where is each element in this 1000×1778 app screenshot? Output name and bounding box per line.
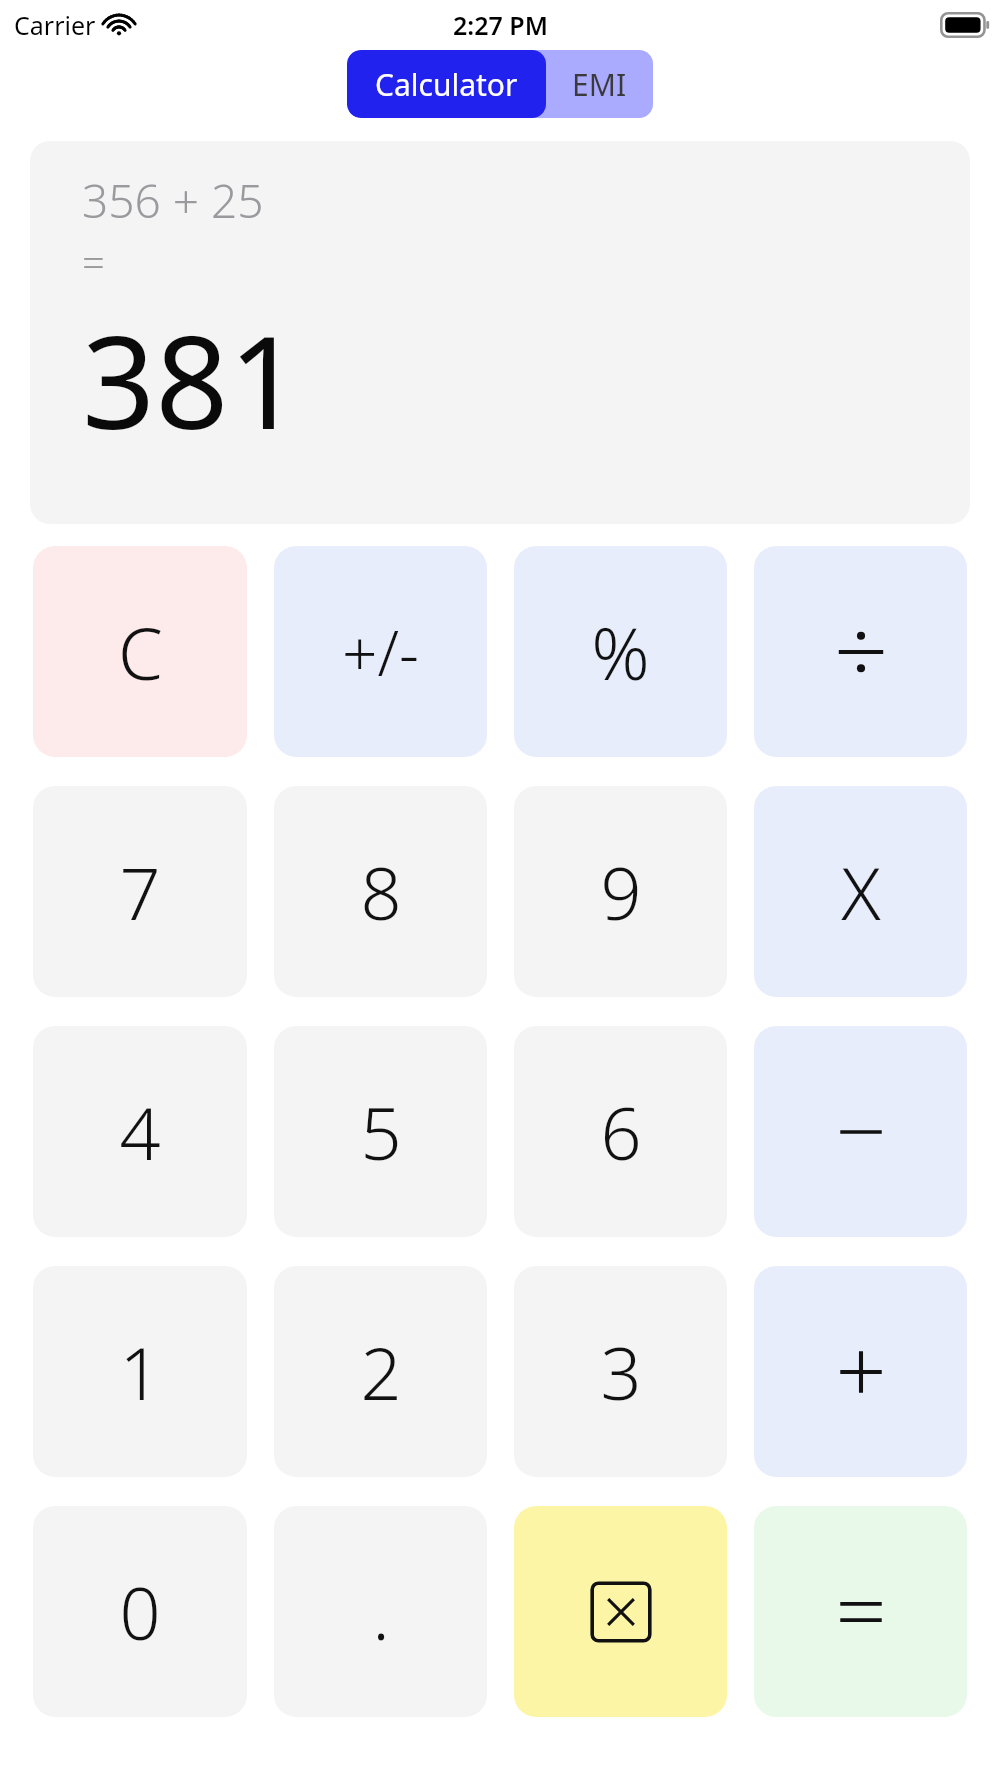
button[interactable]: 9 [514,786,727,997]
button[interactable]: 2 [274,1266,487,1477]
staticText: = [82,234,105,288]
staticText: 2 [360,1323,402,1421]
button[interactable]: 1 [33,1266,247,1477]
button[interactable]: 7 [33,786,247,997]
button[interactable]: Divide [754,546,967,757]
button[interactable]: 5 [274,1026,487,1237]
staticText: 3 [600,1323,642,1421]
staticText: 0 [119,1563,161,1661]
button[interactable]: . [274,1506,487,1717]
button[interactable]: 0 [33,1506,247,1717]
staticText: Carrier [14,8,96,42]
staticText: 6 [600,1083,642,1181]
staticText: 356 + 25 [82,169,264,232]
staticText: 7 [119,843,161,941]
staticText: 1 [119,1323,161,1421]
button[interactable]: Minus [754,1026,967,1237]
staticText: C [118,603,163,701]
button[interactable]: Calculator [347,50,546,118]
button[interactable]: Equals [754,1506,967,1717]
staticText: 381 [82,292,302,466]
staticText: X [841,843,881,941]
staticText: 8 [360,843,402,941]
button[interactable]: C [33,546,247,757]
button[interactable]: X [754,786,967,997]
staticText: % [591,603,650,701]
staticText: EMI [572,64,627,105]
button[interactable]: 6 [514,1026,727,1237]
staticText: . [372,1563,390,1661]
staticText: +/- [342,610,419,694]
button[interactable]: 3 [514,1266,727,1477]
button[interactable]: 4 [33,1026,247,1237]
staticText: 9 [600,843,642,941]
button[interactable]: Backspace [514,1506,727,1717]
button[interactable]: +/- [274,546,487,757]
staticText: 5 [360,1083,402,1181]
button[interactable]: Plus [754,1266,967,1477]
button[interactable]: 8 [274,786,487,997]
staticText: 2:27 PM [453,8,548,42]
staticText: 4 [119,1083,161,1181]
button[interactable]: EMI [546,50,653,118]
staticText: Calculator [375,64,518,105]
button[interactable]: % [514,546,727,757]
